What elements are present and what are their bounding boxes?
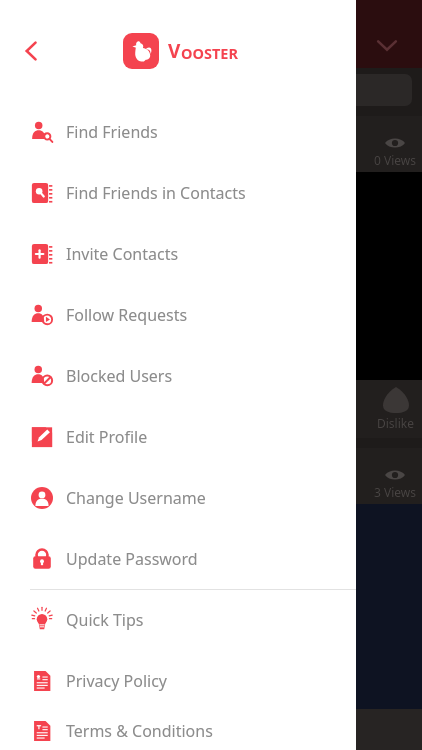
staticText: V: [168, 38, 181, 64]
button[interactable]: Quick Tips: [0, 590, 356, 650]
button[interactable]: Back: [10, 29, 54, 73]
staticText: 3 Views: [374, 484, 416, 500]
button[interactable]: Privacy Policy: [0, 650, 356, 711]
staticText: Find Friends in Contacts: [66, 182, 246, 204]
staticText: Edit Profile: [66, 426, 148, 448]
button[interactable]: Blocked Users: [0, 345, 356, 406]
button[interactable]: Change Username: [0, 467, 356, 528]
button[interactable]: Follow Requests: [0, 284, 356, 345]
staticText: Find Friends: [66, 121, 158, 143]
staticText: Blocked Users: [66, 365, 173, 387]
staticText: Quick Tips: [66, 609, 144, 631]
staticText: 0 Views: [374, 152, 416, 168]
button[interactable]: Update Password: [0, 528, 356, 589]
staticText: Terms & Conditions: [66, 720, 213, 742]
staticText: Dislike: [377, 415, 414, 431]
button[interactable]: Find Friends: [0, 101, 356, 162]
button[interactable]: Invite Contacts: [0, 223, 356, 284]
staticText: Update Password: [66, 548, 198, 570]
button[interactable]: Terms & Conditions: [0, 711, 356, 750]
button[interactable]: Find Friends in Contacts: [0, 162, 356, 223]
button[interactable]: Edit Profile: [0, 406, 356, 467]
staticText: Follow Requests: [66, 304, 188, 326]
staticText: Privacy Policy: [66, 670, 167, 692]
staticText: Invite Contacts: [66, 243, 179, 265]
staticText: Change Username: [66, 487, 206, 509]
staticText: OOSTER: [181, 43, 238, 63]
